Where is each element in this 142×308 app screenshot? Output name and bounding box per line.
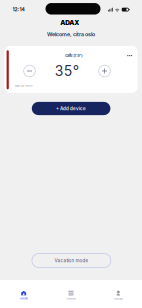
staticText: cafe (7.5°): [65, 53, 82, 58]
staticText: Account: [114, 297, 123, 300]
button[interactable]: More options: [124, 51, 135, 60]
staticText: Welcome, citra oslo: [47, 31, 95, 38]
button[interactable]: Home: [0, 291, 47, 300]
button[interactable]: Increase temperature: [97, 64, 111, 78]
button[interactable]: Overview: [47, 291, 95, 300]
staticText: + Add device: [56, 106, 86, 111]
staticText: 12:14: [12, 6, 24, 12]
staticText: Vacation mode: [54, 258, 88, 263]
staticText: Home: [20, 297, 27, 300]
staticText: Overview: [66, 297, 76, 300]
button[interactable]: Decrease temperature: [22, 64, 36, 78]
button[interactable]: Account: [95, 291, 142, 300]
button[interactable]: + Add device: [32, 102, 110, 115]
staticText: ADAX: [60, 18, 79, 26]
button[interactable]: Vacation mode: [32, 253, 111, 267]
staticText: 35°: [55, 62, 79, 79]
staticText: Manual mode: [15, 84, 33, 87]
